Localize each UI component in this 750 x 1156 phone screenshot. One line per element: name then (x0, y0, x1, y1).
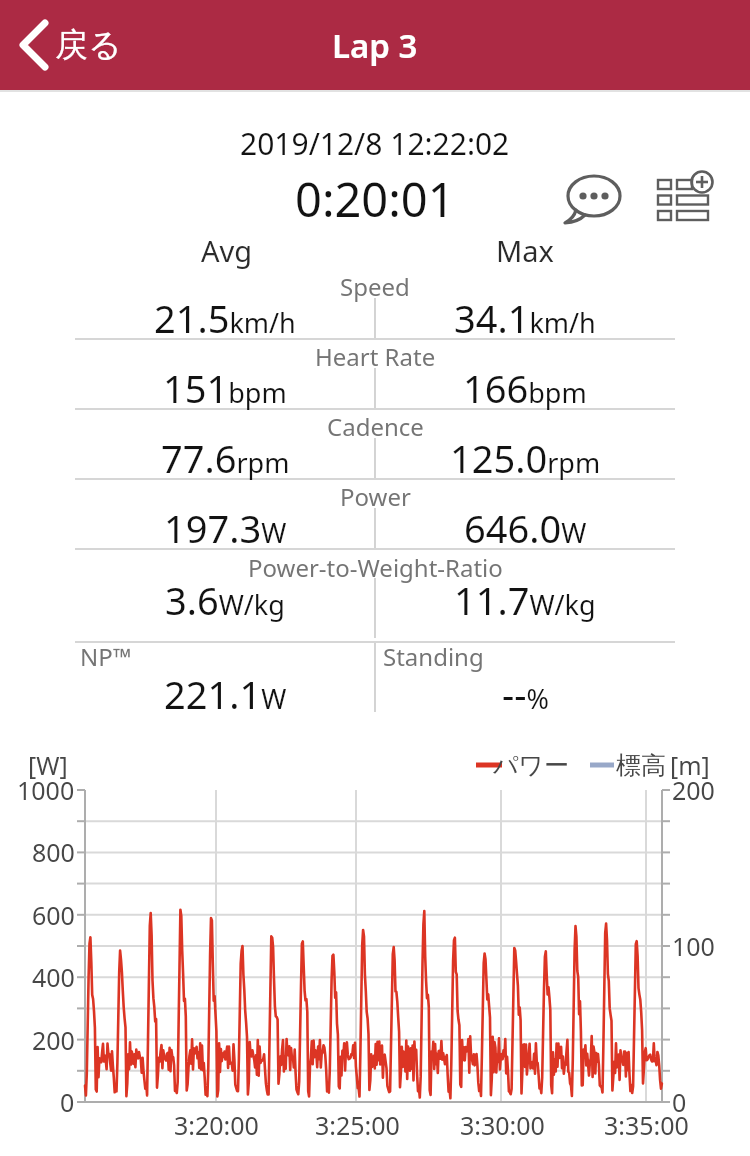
staticText: 34.1km/h (454, 292, 596, 344)
staticText: 221.1W (164, 668, 287, 720)
staticText: 125.0rpm (450, 432, 601, 484)
staticText: 151bpm (163, 362, 287, 414)
staticText: 0:20:01 (295, 167, 455, 227)
staticText: 0 (60, 1085, 75, 1119)
staticText: 3.6W/kg (165, 574, 285, 626)
staticText: 戻る (55, 24, 122, 66)
staticText: 21.5km/h (154, 292, 296, 344)
staticText: [W] (28, 748, 68, 782)
staticText: パワー (493, 750, 570, 781)
staticText: 100 (672, 929, 715, 963)
staticText: 200 (32, 1023, 75, 1057)
staticText: Standing (383, 640, 484, 673)
staticText: 0 (672, 1085, 687, 1119)
staticText: Max (496, 231, 554, 270)
staticText: NP™ (80, 640, 132, 673)
staticText: 600 (32, 898, 75, 932)
staticText: 3:25:00 (315, 1108, 400, 1142)
staticText: 標高 (616, 750, 666, 781)
staticText: 77.6rpm (161, 432, 290, 484)
button[interactable]: 戻る (0, 0, 140, 90)
staticText: Power-to-Weight-Ratio (248, 551, 503, 584)
staticText: 800 (32, 835, 75, 869)
staticText: Speed (340, 270, 410, 303)
staticText: Avg (201, 231, 253, 270)
staticText: 197.3W (164, 502, 287, 554)
button[interactable] (653, 170, 719, 226)
staticText: 1000 (17, 773, 75, 807)
staticText: 646.0W (464, 502, 587, 554)
staticText: Heart Rate (315, 340, 436, 373)
staticText: 166bpm (463, 362, 587, 414)
staticText: [m] (670, 748, 710, 782)
staticText: 3:30:00 (460, 1108, 545, 1142)
staticText: --% (502, 668, 549, 720)
staticText: 400 (32, 960, 75, 994)
button[interactable] (560, 168, 628, 228)
staticText: Cadence (327, 410, 424, 443)
staticText: Power (340, 480, 411, 513)
staticText: 11.7W/kg (454, 574, 596, 626)
staticText: 200 (672, 773, 715, 807)
staticText: 3:20:00 (174, 1108, 259, 1142)
staticText: Lap 3 (332, 23, 418, 68)
staticText: 2019/12/8 12:22:02 (240, 123, 510, 164)
staticText: 3:35:00 (604, 1108, 689, 1142)
